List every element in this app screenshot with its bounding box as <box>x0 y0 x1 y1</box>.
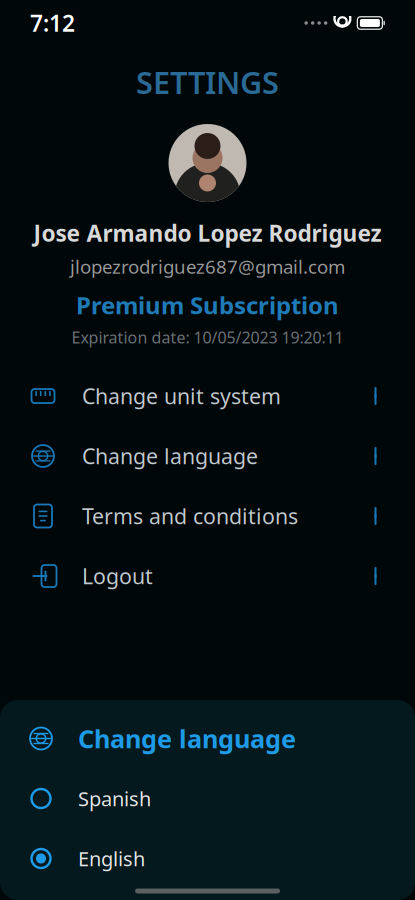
staticText: Expiration date: 10/05/2023 19:20:11 <box>71 327 343 348</box>
staticText: Change unit system <box>82 382 281 410</box>
staticText: 7:12 <box>30 8 75 38</box>
button[interactable]: Change language <box>0 426 415 486</box>
button[interactable]: Change unit system <box>0 366 415 426</box>
staticText: SETTINGS <box>136 62 279 102</box>
staticText: English <box>78 845 145 872</box>
button[interactable]: English <box>0 828 415 888</box>
button[interactable]: Change language <box>0 708 415 768</box>
staticText: Change language <box>82 442 258 470</box>
staticText: jlopezrodriguez687@gmail.com <box>70 254 345 279</box>
button[interactable]: Logout <box>0 546 415 606</box>
staticText: Terms and conditions <box>82 502 298 530</box>
staticText: Spanish <box>78 785 151 812</box>
staticText: Change language <box>78 722 296 755</box>
staticText: Jose Armando Lopez Rodriguez <box>33 218 381 248</box>
button[interactable]: Terms and conditions <box>0 486 415 546</box>
button[interactable]: Spanish <box>0 768 415 828</box>
staticText: Logout <box>82 562 153 590</box>
staticText: Premium Subscription <box>76 289 339 321</box>
